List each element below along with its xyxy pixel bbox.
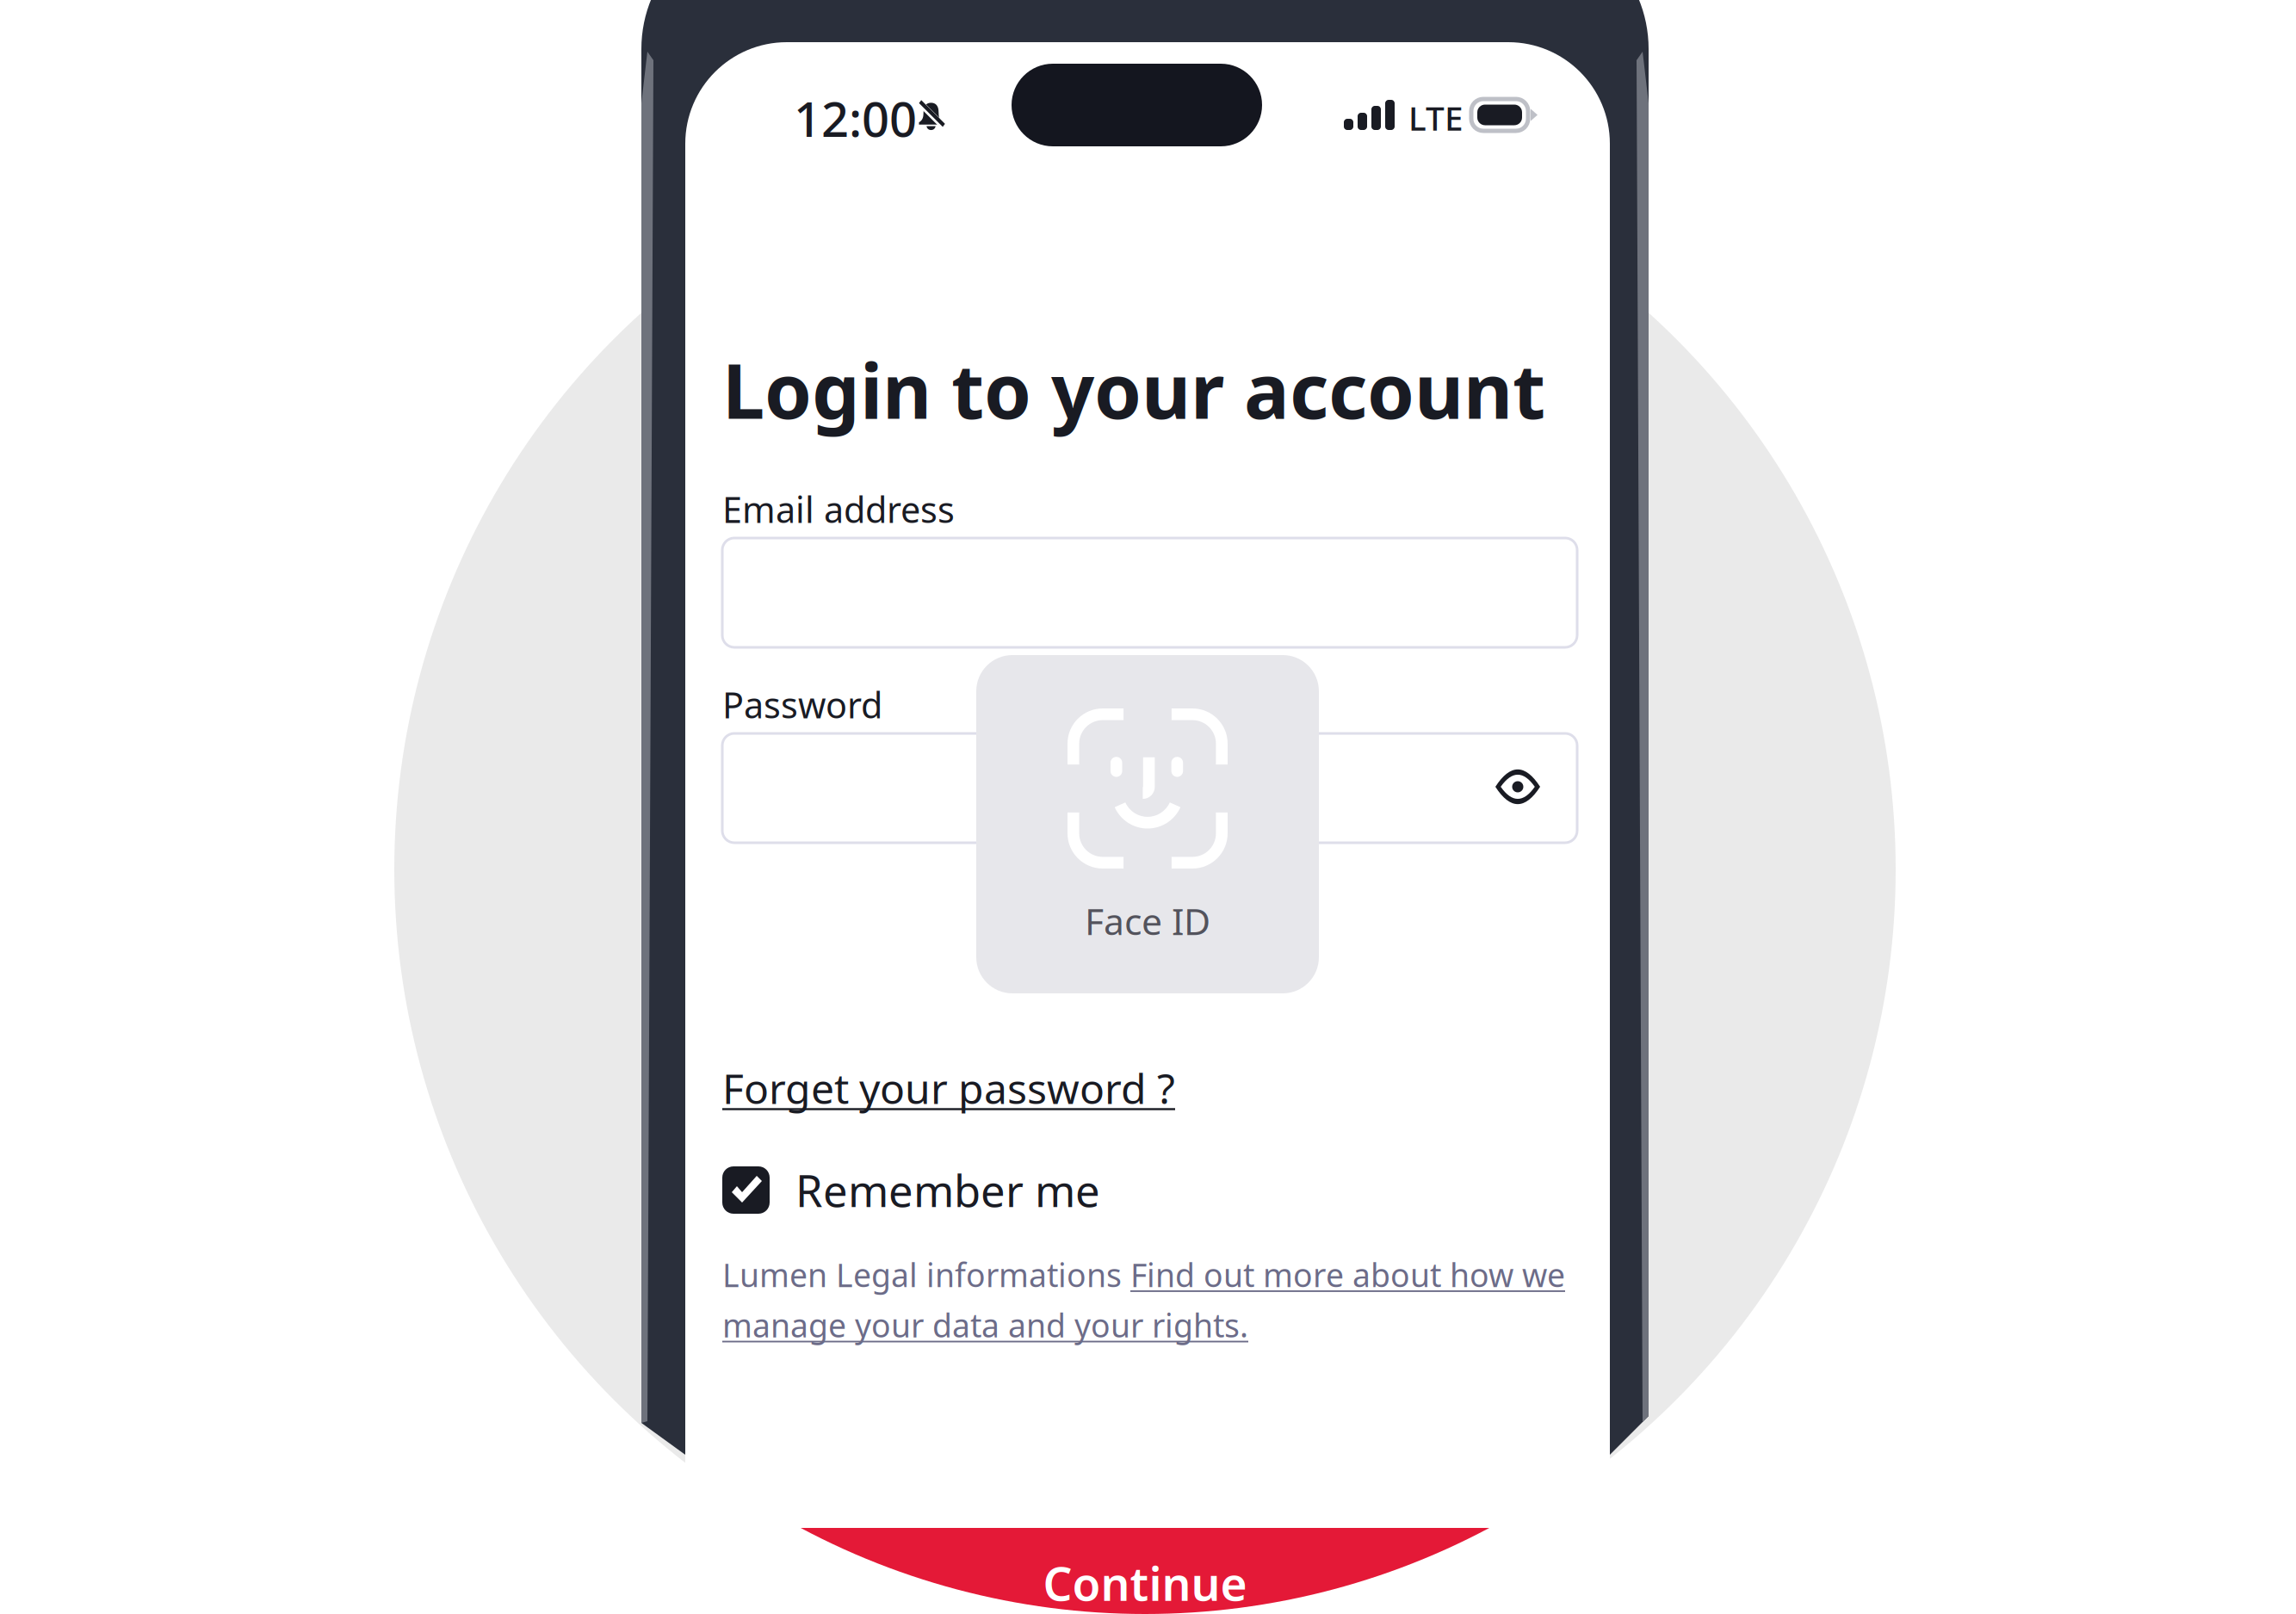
staticText: Lumen Legal informations Find out more a… xyxy=(722,1253,1565,1346)
button[interactable]: Lumen Legal informations Find out more a… xyxy=(685,42,1610,135)
button[interactable]: Continue xyxy=(0,0,1464,86)
button[interactable]: Email address xyxy=(685,42,1610,152)
button[interactable]: Password xyxy=(685,42,1610,152)
button[interactable]: Forget your password ? xyxy=(685,42,1610,97)
staticText: Face ID xyxy=(1085,896,1210,945)
staticText: Password xyxy=(722,681,882,728)
staticText: Forget your password ? xyxy=(722,1061,1175,1115)
button[interactable]: Remember me xyxy=(685,42,1610,90)
staticText: 12:00 xyxy=(794,86,917,150)
staticText: Login to your account xyxy=(722,339,1545,440)
staticText: Remember me xyxy=(795,1161,1100,1219)
staticText: Continue xyxy=(1043,1553,1247,1613)
button[interactable]: Show password xyxy=(685,42,1610,73)
staticText: LTE xyxy=(1408,96,1464,140)
staticText: Email address xyxy=(722,485,955,533)
button[interactable]: Face ID xyxy=(685,42,1610,380)
